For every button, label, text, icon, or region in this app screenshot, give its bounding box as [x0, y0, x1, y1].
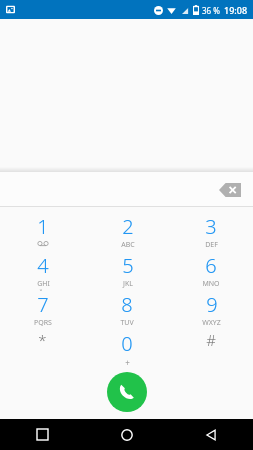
button[interactable]: Call [107, 372, 147, 412]
staticText: # [206, 330, 216, 350]
staticText: 19:08 [224, 4, 248, 16]
staticText: + [125, 357, 130, 366]
button[interactable]: 1 [0, 213, 85, 252]
button[interactable]: 0 [85, 330, 169, 366]
staticText: 4 [37, 252, 49, 279]
button[interactable]: Back [169, 419, 253, 450]
button[interactable]: Backspace [217, 179, 243, 201]
staticText: 1 [37, 213, 49, 240]
staticText: 2 [122, 213, 134, 240]
staticText: 7 [37, 291, 49, 318]
button[interactable]: Home [85, 419, 169, 450]
staticText: 3 [205, 213, 217, 240]
staticText: MNO [202, 279, 220, 289]
button[interactable]: 7 [0, 291, 85, 330]
staticText: WXYZ [202, 318, 221, 328]
staticText: TUV [120, 318, 134, 328]
button[interactable]: 3 [169, 213, 253, 252]
staticText: ИЙКЛ [33, 289, 53, 291]
staticText: 36 % [202, 5, 220, 16]
staticText: * [38, 330, 47, 350]
button[interactable]: 5 [85, 252, 169, 291]
staticText: 9 [206, 291, 218, 318]
staticText: ABC [121, 240, 135, 250]
button[interactable]: 9 [169, 291, 253, 330]
button[interactable]: # [169, 330, 253, 366]
staticText: 0 [121, 330, 133, 357]
staticText: 5 [122, 252, 134, 279]
staticText: JKL [123, 279, 133, 289]
button[interactable]: 6 [169, 252, 253, 291]
staticText: DEF [205, 240, 218, 250]
staticText: 6 [205, 252, 217, 279]
button[interactable]: * [0, 330, 85, 366]
staticText: 8 [121, 291, 133, 318]
staticText: GHI [37, 279, 50, 289]
button[interactable]: Recents [0, 419, 85, 450]
button[interactable]: 8 [85, 291, 169, 330]
button[interactable]: 2 [85, 213, 169, 252]
staticText: PQRS [34, 318, 52, 328]
button[interactable]: 4 [0, 252, 85, 291]
